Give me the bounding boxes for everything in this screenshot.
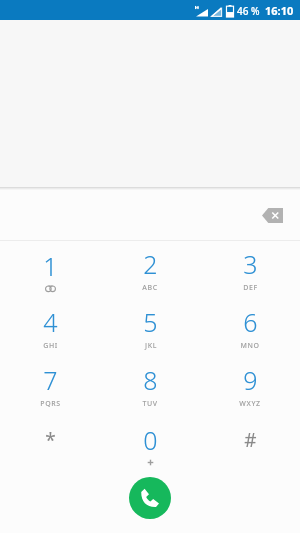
button[interactable]: 8 [100, 357, 200, 415]
button[interactable]: Call [129, 477, 171, 519]
staticText: 8 [143, 363, 158, 397]
button[interactable]: 0 [100, 415, 200, 473]
staticText: 0 [143, 423, 158, 457]
staticText: 7 [43, 363, 58, 397]
button[interactable]: # [200, 415, 300, 473]
staticText: WXYZ [239, 399, 261, 409]
staticText: # [244, 427, 257, 453]
staticText: 46 % [237, 4, 260, 18]
staticText: 16:10 [265, 3, 294, 18]
button[interactable]: 9 [200, 357, 300, 415]
button[interactable]: 2 [100, 241, 200, 299]
staticText: 4 [43, 305, 58, 339]
staticText: 6 [243, 305, 258, 339]
staticText: PQRS [40, 399, 61, 409]
staticText: 5 [143, 305, 158, 339]
button[interactable]: 1 [0, 241, 100, 299]
staticText: 3 [243, 247, 258, 281]
staticText: GHI [43, 341, 58, 351]
staticText: 2 [143, 247, 158, 281]
staticText: ABC [142, 283, 158, 293]
staticText: * [45, 427, 56, 453]
staticText: JKL [145, 341, 157, 351]
staticText: TUV [142, 399, 158, 409]
button[interactable]: 7 [0, 357, 100, 415]
staticText: MNO [240, 341, 260, 351]
staticText: 9 [243, 363, 258, 397]
staticText: 1 [43, 249, 58, 283]
button[interactable]: * [0, 415, 100, 473]
button[interactable]: 3 [200, 241, 300, 299]
button[interactable]: 6 [200, 299, 300, 357]
button[interactable]: Backspace [252, 197, 292, 233]
button[interactable]: 4 [0, 299, 100, 357]
button[interactable]: 5 [100, 299, 200, 357]
staticText: DEF [243, 283, 258, 293]
